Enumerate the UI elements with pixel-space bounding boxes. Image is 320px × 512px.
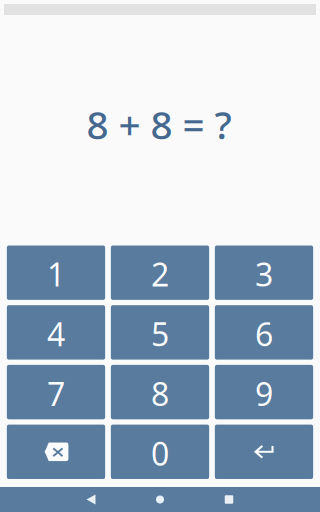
- button[interactable]: Home: [130, 487, 190, 512]
- staticText: 0: [151, 432, 169, 475]
- staticText: 7: [47, 372, 65, 415]
- button[interactable]: 6: [215, 305, 313, 360]
- button[interactable]: Recent apps: [199, 487, 259, 512]
- button[interactable]: 2: [111, 245, 209, 300]
- staticText: 8 + 8 = ?: [86, 99, 231, 150]
- button[interactable]: 9: [215, 365, 313, 419]
- button[interactable]: 7: [7, 365, 105, 419]
- staticText: 4: [47, 313, 65, 355]
- staticText: 8: [151, 372, 169, 415]
- staticText: 6: [255, 313, 273, 355]
- staticText: 2: [151, 253, 169, 295]
- button[interactable]: Enter: [215, 425, 313, 479]
- button[interactable]: 4: [7, 305, 105, 360]
- button[interactable]: 8: [111, 365, 209, 419]
- button[interactable]: Delete: [7, 425, 105, 479]
- staticText: 9: [255, 372, 273, 415]
- button[interactable]: 5: [111, 305, 209, 360]
- staticText: 1: [47, 253, 65, 295]
- staticText: 3: [255, 253, 273, 295]
- button[interactable]: 0: [111, 425, 209, 479]
- button[interactable]: 3: [215, 245, 313, 300]
- button[interactable]: Back: [61, 487, 121, 512]
- staticText: 5: [151, 313, 169, 355]
- button[interactable]: 1: [7, 245, 105, 300]
